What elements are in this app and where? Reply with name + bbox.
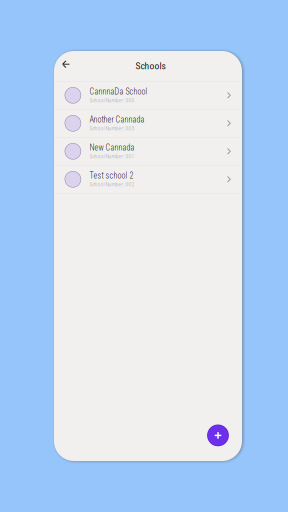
button[interactable]: Back (57, 55, 75, 73)
button[interactable]: Test school 2 (54, 166, 242, 194)
button[interactable]: CannnaDa School (54, 82, 242, 110)
staticText: Test school 2 (89, 171, 133, 180)
staticText: School Number: 003 (89, 125, 134, 132)
button[interactable]: New Cannada (54, 138, 242, 166)
button[interactable]: Another Cannada (54, 110, 242, 138)
staticText: School Number: 000 (89, 97, 134, 104)
staticText: CannnaDa School (89, 87, 147, 96)
button[interactable]: Add school (207, 424, 229, 446)
staticText: School Number: 002 (89, 181, 134, 188)
staticText: New Cannada (89, 143, 134, 152)
staticText: School Number: 001 (89, 153, 134, 160)
staticText: Another Cannada (89, 115, 144, 124)
staticText: Schools (135, 60, 165, 72)
